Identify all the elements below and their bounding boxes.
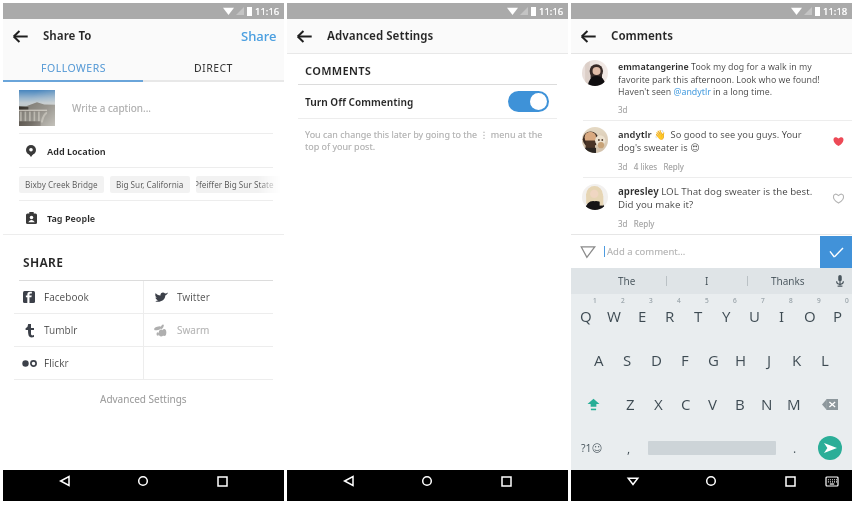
staticText: E: [638, 306, 647, 326]
button[interactable]: Home: [700, 470, 722, 492]
button[interactable]: apresley LOL That dog sweater is the bes…: [571, 178, 852, 234]
button[interactable]: Keyboard: [821, 470, 843, 492]
button[interactable]: R: [656, 294, 684, 338]
button[interactable]: H: [727, 338, 755, 382]
button[interactable]: Facebook: [3, 281, 143, 313]
button[interactable]: M: [780, 382, 807, 426]
button[interactable]: Space: [648, 426, 776, 470]
button[interactable]: C: [672, 382, 699, 426]
button[interactable]: Z: [616, 382, 644, 426]
staticText: Advanced Settings: [100, 392, 187, 406]
staticText: 1: [593, 296, 597, 305]
button[interactable]: N: [753, 382, 780, 426]
staticText: K: [792, 350, 802, 370]
button[interactable]: Advanced Settings: [3, 390, 284, 408]
button[interactable]: Shift: [571, 382, 616, 426]
staticText: N: [761, 394, 773, 414]
button[interactable]: Post comment: [820, 236, 852, 268]
button[interactable]: O: [796, 294, 824, 338]
button[interactable]: Recents: [779, 470, 801, 492]
button[interactable]: W: [600, 294, 628, 338]
button[interactable]: Tag People: [3, 201, 284, 234]
button[interactable]: B: [726, 382, 753, 426]
button[interactable]: Like: [824, 127, 852, 155]
button[interactable]: K: [783, 338, 811, 382]
staticText: ?1☺: [581, 441, 603, 455]
button[interactable]: X: [644, 382, 672, 426]
button[interactable]: Swarm: [144, 314, 284, 346]
button[interactable]: J: [755, 338, 783, 382]
button[interactable]: I: [667, 268, 747, 294]
staticText: I: [705, 274, 709, 288]
button[interactable]: P: [824, 294, 852, 338]
staticText: S: [623, 350, 632, 370]
button[interactable]: F: [671, 338, 699, 382]
button[interactable]: Q: [571, 294, 600, 338]
button[interactable]: Back: [54, 470, 76, 492]
button[interactable]: Flickr: [3, 347, 143, 379]
staticText: T: [694, 306, 703, 326]
staticText: Add a comment...: [607, 245, 686, 258]
button[interactable]: Back: [3, 19, 37, 53]
button[interactable]: Like: [824, 184, 852, 212]
button[interactable]: U: [740, 294, 768, 338]
button[interactable]: Back: [338, 470, 360, 492]
staticText: L: [821, 350, 829, 370]
staticText: Thanks: [771, 274, 805, 288]
staticText: andytlr 👋 So good to see you guys. Your …: [618, 128, 822, 154]
staticText: Share: [241, 27, 277, 45]
button[interactable]: I: [768, 294, 796, 338]
staticText: ,: [627, 440, 631, 456]
button[interactable]: Home: [132, 470, 154, 492]
button[interactable]: Add Location: [3, 134, 284, 167]
button[interactable]: Pfeiffer Big Sur State Park: [196, 176, 284, 193]
button[interactable]: Voice input: [828, 268, 852, 294]
staticText: D: [651, 350, 662, 370]
button[interactable]: Recents: [495, 470, 517, 492]
button[interactable]: Share: [231, 21, 284, 51]
button[interactable]: ?1☺: [578, 434, 606, 462]
button[interactable]: T: [684, 294, 712, 338]
button[interactable]: Home: [416, 470, 438, 492]
button[interactable]: FOLLOWERS: [3, 53, 143, 82]
button[interactable]: Write a caption...: [3, 82, 284, 133]
button[interactable]: S: [613, 338, 642, 382]
staticText: Tag People: [47, 212, 96, 224]
button[interactable]: Send: [817, 435, 843, 461]
button[interactable]: Big Sur, California: [110, 176, 190, 193]
button[interactable]: The: [587, 268, 666, 294]
button[interactable]: Tumblr: [3, 314, 143, 346]
button[interactable]: Back: [287, 19, 321, 53]
button[interactable]: Turn Off Commenting: [508, 91, 549, 112]
staticText: A: [594, 350, 604, 370]
button[interactable]: V: [699, 382, 726, 426]
button[interactable]: DIRECT: [143, 53, 284, 82]
button[interactable]: D: [642, 338, 671, 382]
button[interactable]: ,: [616, 435, 642, 461]
staticText: DIRECT: [194, 61, 233, 75]
button[interactable]: andytlr 👋 So good to see you guys. Your …: [571, 121, 852, 177]
staticText: Tumblr: [44, 323, 78, 337]
staticText: Pfeiffer Big Sur State Park: [196, 179, 284, 190]
staticText: You can change this later by going to th…: [305, 128, 555, 153]
button[interactable]: L: [811, 338, 839, 382]
button[interactable]: E: [628, 294, 656, 338]
staticText: M: [787, 394, 801, 414]
button[interactable]: Recents: [211, 470, 233, 492]
button[interactable]: Backspace: [807, 382, 852, 426]
button[interactable]: Thanks: [748, 268, 828, 294]
button[interactable]: Back: [622, 470, 644, 492]
button[interactable]: G: [699, 338, 727, 382]
button[interactable]: Back: [571, 19, 605, 53]
button[interactable]: Y: [712, 294, 740, 338]
staticText: Comments: [611, 28, 674, 44]
staticText: emmatangerine Took my dog for a walk in …: [618, 61, 822, 97]
staticText: W: [607, 306, 621, 326]
button[interactable]: A: [584, 338, 613, 382]
button[interactable]: .: [782, 435, 808, 461]
button[interactable]: Turn Off Commenting: [287, 85, 568, 118]
button[interactable]: Twitter: [144, 281, 284, 313]
button[interactable]: Bixby Creek Bridge: [19, 176, 104, 193]
button[interactable]: emmatangerine Took my dog for a walk in …: [571, 54, 852, 120]
